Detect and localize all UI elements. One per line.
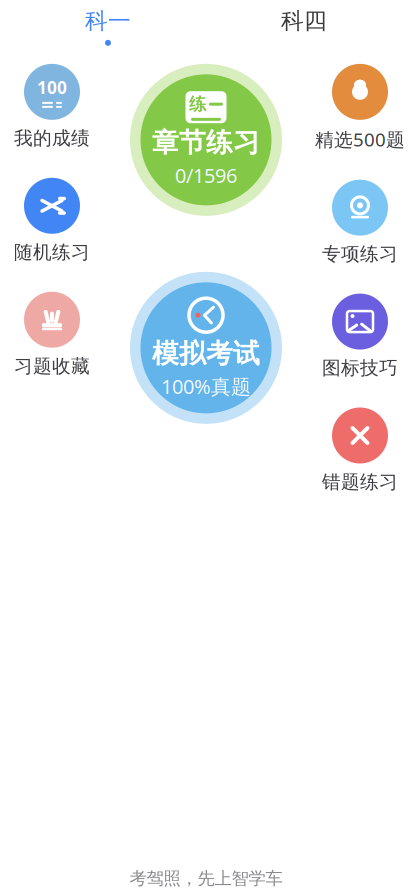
button[interactable]: 100: [2, 64, 102, 150]
staticText: 专项练习: [322, 243, 398, 265]
button[interactable]: 练: [130, 64, 282, 216]
button[interactable]: 习题收藏: [2, 292, 102, 378]
staticText: 习题收藏: [14, 355, 90, 378]
button[interactable]: 模拟考试: [130, 272, 282, 424]
button[interactable]: 随机练习: [2, 178, 102, 264]
staticText: 练: [189, 94, 206, 115]
staticText: 考驾照，先上智学车: [129, 868, 282, 889]
staticText: 我的成绩: [14, 127, 90, 150]
staticText: 图标技巧: [322, 357, 398, 379]
button[interactable]: 精选500题: [310, 64, 410, 152]
staticText: 0/1596: [175, 162, 237, 189]
staticText: 100: [37, 76, 67, 99]
staticText: 错题练习: [322, 470, 398, 493]
staticText: 精选500题: [315, 127, 405, 152]
button[interactable]: 错题练习: [310, 407, 410, 493]
staticText: 章节练习: [152, 126, 260, 159]
button[interactable]: 专项练习: [310, 180, 410, 265]
button[interactable]: 图标技巧: [310, 294, 410, 379]
staticText: 随机练习: [14, 241, 90, 264]
button[interactable]: 科一: [10, 7, 206, 46]
staticText: 科四: [281, 7, 327, 35]
staticText: 100%真题: [161, 373, 251, 400]
staticText: 模拟考试: [152, 337, 260, 370]
button[interactable]: 科四: [206, 7, 402, 46]
staticText: 科一: [85, 7, 131, 35]
